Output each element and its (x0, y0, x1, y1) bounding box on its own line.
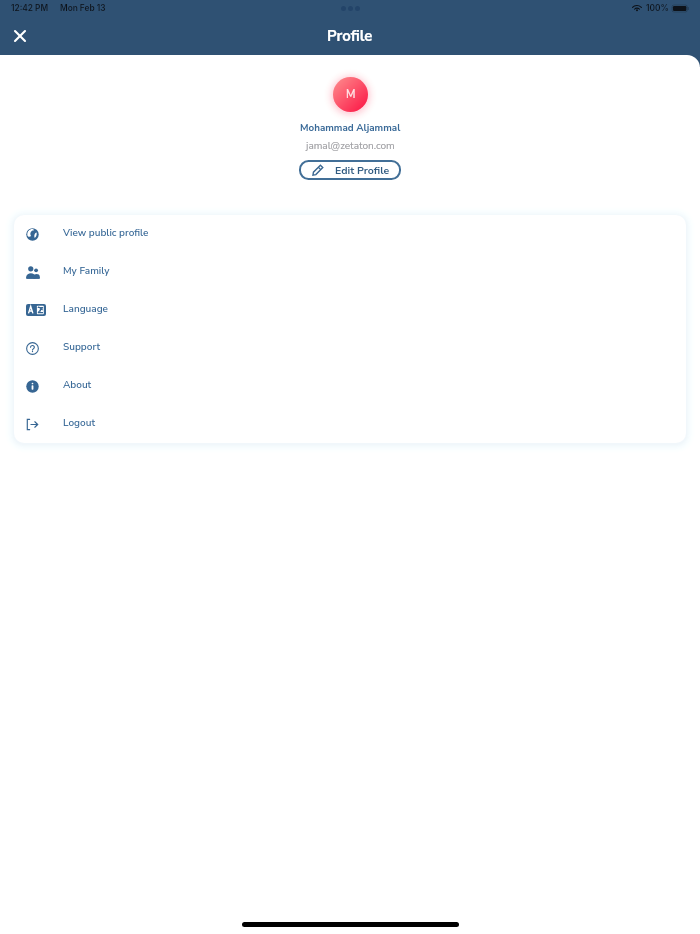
staticText: 100% (646, 3, 669, 13)
button[interactable]: Edit Profile (299, 160, 401, 180)
staticText: Mon Feb 13 (60, 3, 106, 13)
staticText: Profile (327, 26, 373, 46)
staticText: 12:42 PM (11, 3, 49, 13)
button[interactable]: Logout (14, 405, 686, 443)
button[interactable]: About (14, 367, 686, 405)
button[interactable]: My Family (14, 253, 686, 291)
button[interactable]: Support (14, 329, 686, 367)
staticText: Support (63, 340, 101, 354)
button[interactable]: Close (0, 17, 39, 55)
button[interactable]: View public profile (14, 215, 686, 253)
staticText: Mohammad Aljammal (300, 121, 401, 134)
staticText: View public profile (63, 226, 149, 240)
button[interactable]: Language (14, 291, 686, 329)
staticText: About (63, 378, 92, 392)
staticText: M (346, 87, 356, 102)
staticText: Edit Profile (335, 163, 390, 177)
staticText: jamal@zetaton.com (306, 139, 395, 153)
staticText: My Family (63, 264, 110, 278)
staticText: Language (63, 302, 108, 316)
staticText: Logout (63, 416, 96, 430)
